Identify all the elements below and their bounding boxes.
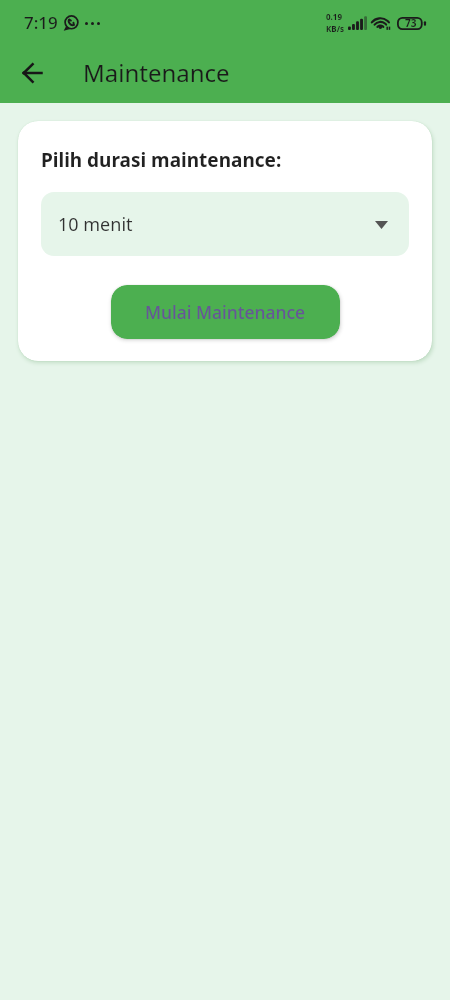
staticText: Maintenance xyxy=(83,56,230,89)
staticText: 73 xyxy=(405,16,417,30)
button[interactable]: 10 menit xyxy=(41,192,409,256)
staticText: Mulai Maintenance xyxy=(145,300,306,324)
staticText: KB/s xyxy=(326,23,344,34)
staticText: Pilih durasi maintenance: xyxy=(41,147,282,173)
staticText: 0.19 xyxy=(326,11,342,22)
staticText: 10 menit xyxy=(58,212,133,237)
button[interactable]: Mulai Maintenance xyxy=(111,285,340,339)
button[interactable]: Back xyxy=(8,49,56,97)
staticText: 7:19 xyxy=(24,11,58,34)
